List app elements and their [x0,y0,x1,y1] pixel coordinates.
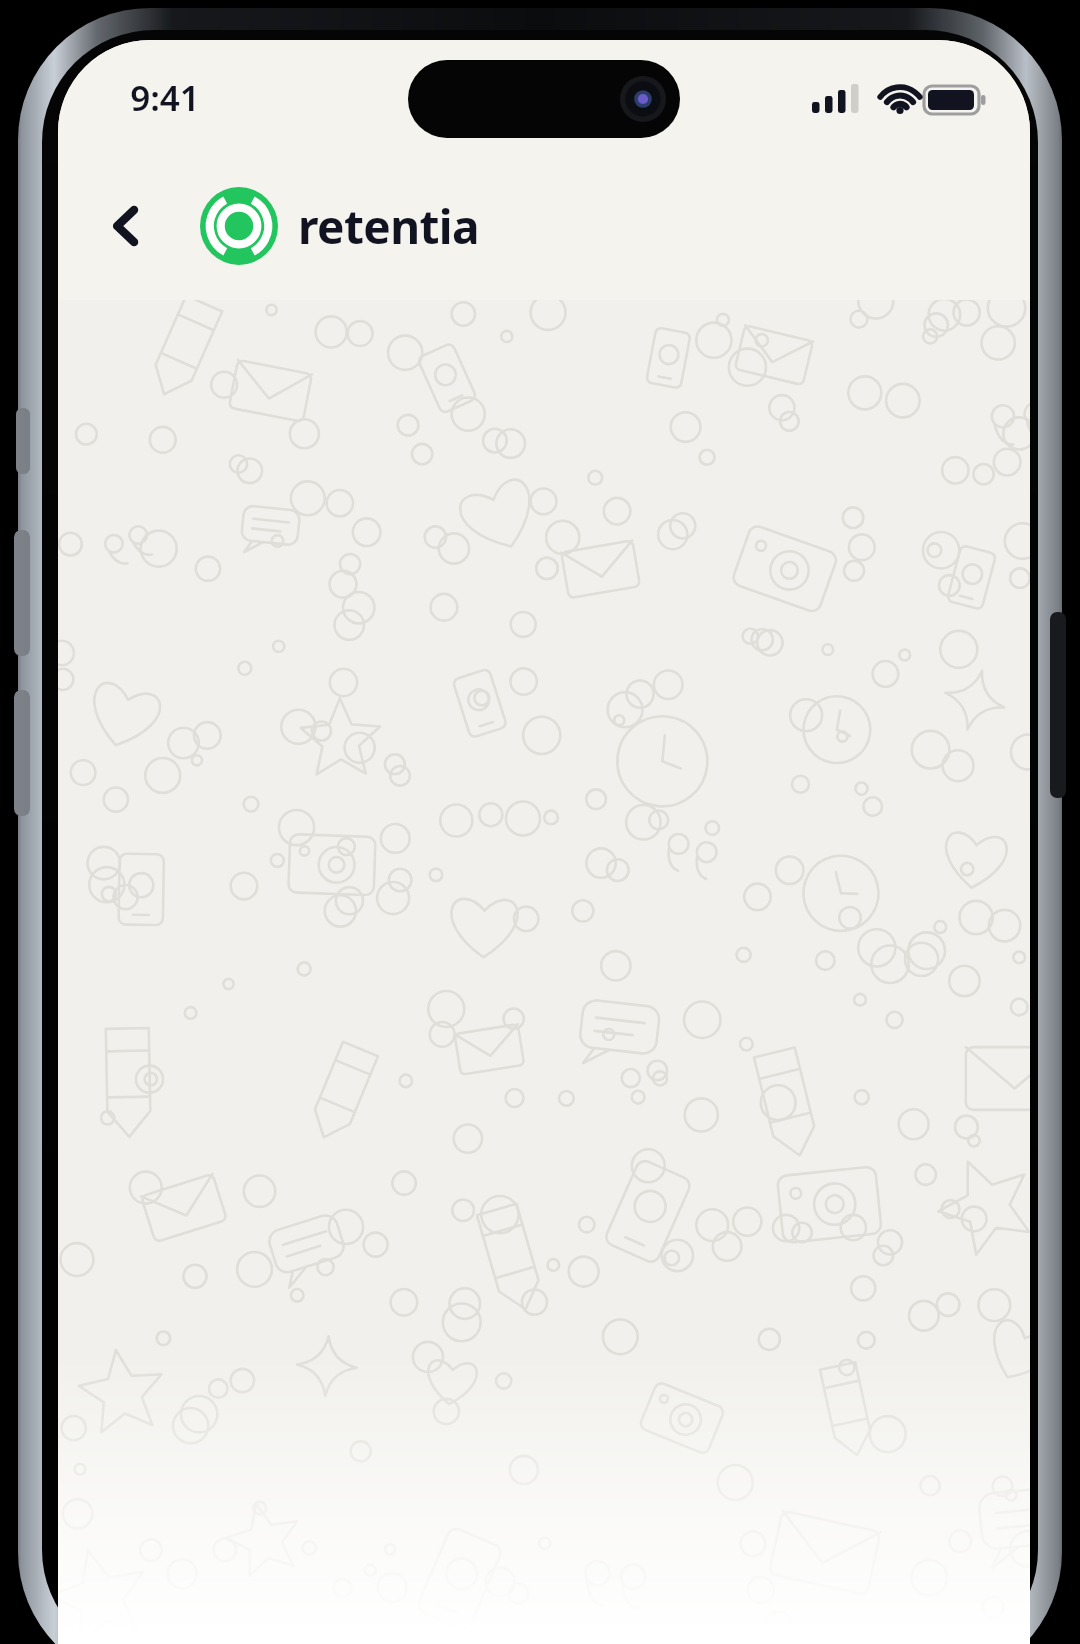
staticText: 9:41 [130,74,200,122]
button[interactable]: retentia [196,181,483,271]
staticText: retentia [298,195,479,258]
button[interactable]: Back [84,184,168,268]
